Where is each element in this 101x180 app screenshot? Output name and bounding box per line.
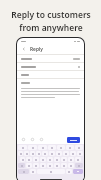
staticText: Reply — [30, 46, 43, 53]
button[interactable] — [63, 151, 69, 156]
button[interactable] — [68, 157, 74, 162]
button[interactable] — [20, 157, 25, 162]
staticText: from anywhere — [19, 22, 83, 34]
button[interactable]: Enter — [73, 169, 83, 174]
button[interactable] — [42, 151, 48, 156]
button[interactable] — [17, 63, 84, 70]
button[interactable] — [17, 71, 84, 78]
button[interactable] — [40, 157, 46, 162]
button[interactable] — [66, 145, 74, 150]
button[interactable] — [26, 157, 32, 162]
button[interactable]: Attach file — [21, 137, 26, 142]
button[interactable] — [18, 169, 29, 174]
button[interactable] — [30, 151, 35, 156]
button[interactable] — [47, 157, 53, 162]
button[interactable] — [28, 145, 37, 150]
button[interactable] — [40, 163, 46, 168]
button[interactable] — [61, 157, 67, 162]
button[interactable] — [54, 163, 60, 168]
button[interactable] — [77, 151, 83, 156]
button[interactable] — [48, 145, 56, 150]
button[interactable] — [18, 145, 27, 150]
button[interactable] — [37, 169, 65, 174]
button[interactable]: Back — [21, 46, 27, 52]
button[interactable] — [24, 151, 29, 156]
button[interactable] — [75, 145, 83, 150]
button[interactable] — [70, 151, 76, 156]
button[interactable] — [18, 163, 25, 168]
button[interactable] — [56, 151, 62, 156]
button[interactable] — [30, 169, 36, 174]
button[interactable] — [33, 163, 39, 168]
button[interactable] — [61, 163, 67, 168]
button[interactable] — [49, 151, 55, 156]
button[interactable] — [26, 163, 32, 168]
button[interactable] — [75, 163, 83, 168]
button[interactable] — [18, 151, 23, 156]
button[interactable] — [38, 145, 47, 150]
button[interactable] — [36, 151, 41, 156]
button[interactable]: Insert link — [30, 137, 35, 142]
button[interactable]: More options — [39, 137, 44, 142]
button[interactable] — [66, 169, 72, 174]
button[interactable]: Send — [67, 137, 80, 143]
button[interactable] — [57, 145, 65, 150]
button[interactable] — [47, 163, 53, 168]
button[interactable] — [68, 163, 74, 168]
button[interactable] — [33, 157, 39, 162]
button[interactable] — [54, 157, 60, 162]
staticText: Reply to customers — [11, 9, 91, 21]
button[interactable] — [17, 55, 84, 62]
button[interactable] — [75, 157, 81, 162]
